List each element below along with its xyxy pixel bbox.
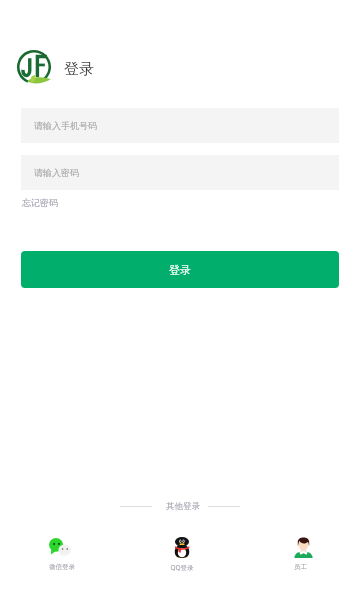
button[interactable]: Employee login [287, 536, 314, 571]
staticText: 请输入手机号码 [34, 120, 97, 131]
other: QQ login [174, 537, 190, 558]
staticText: 微信登录 [49, 563, 75, 571]
staticText: 登录 [64, 60, 94, 79]
button[interactable]: 忘记密码 [16, 194, 64, 211]
staticText: 登录 [169, 263, 191, 277]
staticText: 忘记密码 [22, 197, 58, 208]
staticText: 请输入密码 [34, 167, 79, 178]
button[interactable]: 请输入手机号码 [21, 108, 339, 143]
other: Employee login [294, 536, 313, 558]
button[interactable]: QQ login [166, 536, 198, 572]
button[interactable]: 登录 [21, 251, 339, 288]
other: WeChat login [49, 538, 71, 556]
staticText: QQ登录 [170, 563, 194, 572]
staticText: 其他登录 [166, 501, 200, 512]
staticText: 员工 [294, 563, 307, 571]
button[interactable]: 请输入密码 [21, 155, 339, 190]
button[interactable]: WeChat login [45, 536, 79, 571]
